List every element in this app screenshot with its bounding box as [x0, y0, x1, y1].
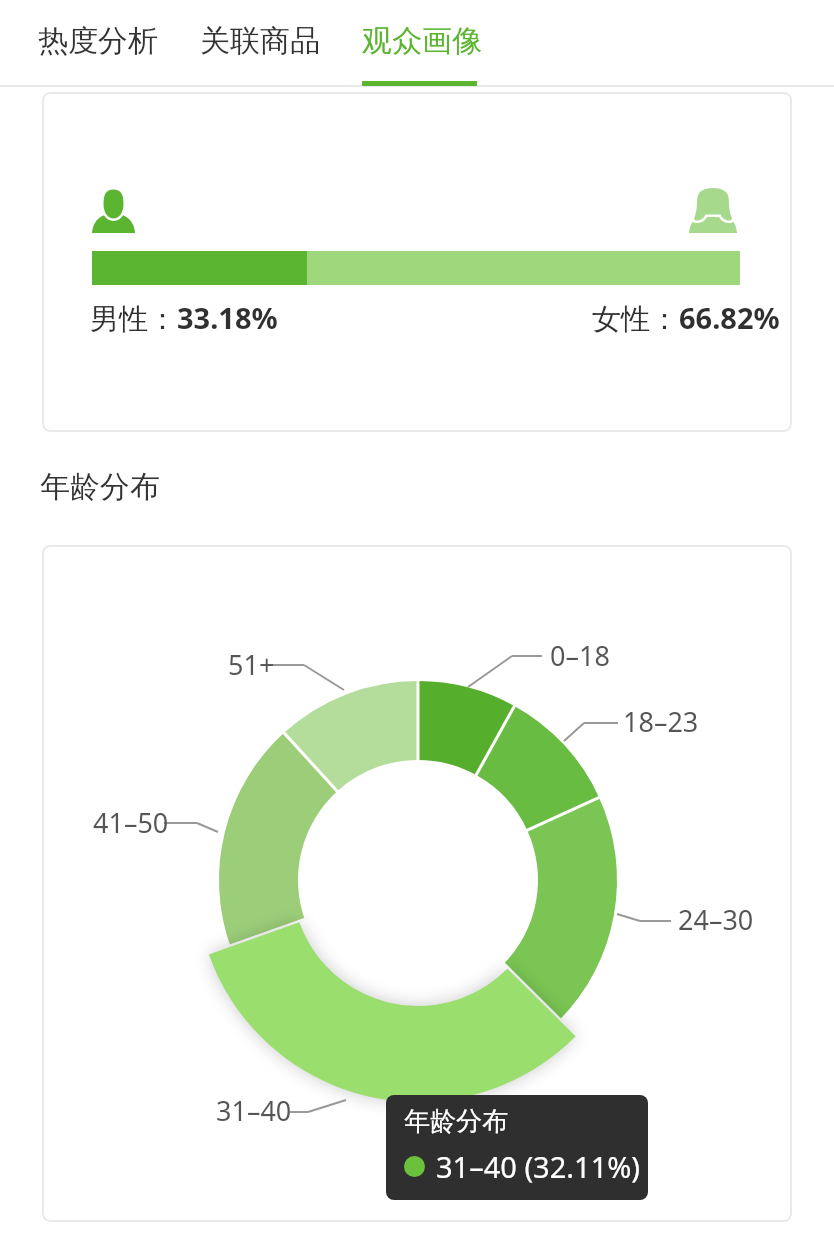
staticText: 18–23	[623, 703, 699, 740]
staticText: 0–18	[550, 637, 610, 674]
staticText: 51+	[228, 646, 275, 683]
staticText: 关联商品	[200, 22, 320, 60]
button[interactable]: 年龄分布	[386, 1095, 648, 1200]
staticText: 31–40	[216, 1092, 292, 1129]
button[interactable]: 热度分析	[30, 14, 166, 68]
button[interactable]: 男性：33.18%	[42, 92, 792, 432]
button[interactable]: 关联商品	[192, 14, 328, 68]
staticText: 24–30	[678, 901, 754, 938]
staticText: 热度分析	[38, 22, 158, 60]
staticText: 31–40 (32.11%)	[436, 1147, 641, 1186]
staticText: 男性：33.18%	[90, 298, 278, 338]
staticText: 观众画像	[362, 22, 482, 60]
button[interactable]	[42, 545, 792, 1222]
staticText: 年龄分布	[40, 468, 160, 506]
button[interactable]: 观众画像	[354, 14, 490, 68]
staticText: 年龄分布	[404, 1105, 508, 1138]
staticText: 41–50	[93, 804, 169, 841]
staticText: 女性：66.82%	[592, 298, 780, 338]
